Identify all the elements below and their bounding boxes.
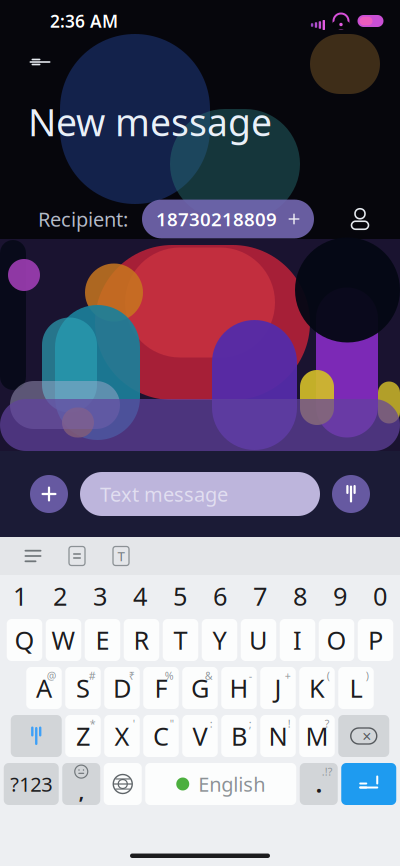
button[interactable]: 18730218809 [142, 200, 314, 238]
staticText: # [89, 668, 96, 683]
staticText: B [231, 719, 247, 753]
staticText: ? [325, 716, 330, 731]
staticText: 18730218809 [156, 207, 277, 231]
button[interactable] [280, 619, 315, 661]
staticText: + [285, 668, 291, 683]
button[interactable]: Shift [11, 715, 62, 757]
staticText: Y [212, 623, 226, 657]
button[interactable]: ₹ [104, 667, 140, 709]
button[interactable]: Return [341, 763, 396, 805]
staticText: 2:36 AM [50, 9, 118, 32]
staticText: ' [133, 716, 135, 731]
button[interactable]: Send [330, 472, 372, 516]
button[interactable]: ?123 [4, 763, 59, 805]
button[interactable]: 8 [280, 581, 320, 611]
staticText: F [154, 671, 167, 705]
button[interactable] [124, 619, 159, 661]
staticText: @ [47, 668, 57, 683]
button[interactable]: English [145, 763, 296, 805]
button[interactable]: 6 [200, 581, 240, 611]
button[interactable]: : [182, 715, 218, 757]
staticText: . [316, 769, 322, 799]
button[interactable]: Delete [338, 715, 389, 757]
button[interactable]: Text message [80, 472, 320, 516]
staticText: ) [366, 668, 369, 683]
staticText: A [36, 671, 52, 705]
button[interactable]: Emoji [62, 763, 100, 805]
button[interactable]: " [143, 715, 179, 757]
staticText: S [76, 671, 90, 705]
button[interactable]: Add attachment [28, 472, 70, 516]
staticText: 1 [13, 579, 27, 613]
button[interactable]: Menu [14, 541, 52, 571]
button[interactable]: 0 [360, 581, 400, 611]
staticText: 7 [253, 579, 267, 613]
staticText: New message [28, 97, 272, 147]
button[interactable]: Text style [102, 541, 140, 571]
button[interactable] [202, 619, 237, 661]
staticText: T [173, 623, 187, 657]
staticText: ?123 [10, 771, 52, 797]
button[interactable]: ) [338, 667, 374, 709]
button[interactable] [7, 619, 42, 661]
staticText: I [293, 623, 302, 657]
button[interactable]: Back [18, 43, 62, 81]
button[interactable]: ' [104, 715, 140, 757]
button[interactable] [358, 619, 393, 661]
staticText: .!? [322, 764, 333, 779]
button[interactable]: 2 [40, 581, 80, 611]
button[interactable]: 3 [80, 581, 120, 611]
staticText: 6 [213, 579, 227, 613]
staticText: 3 [93, 579, 107, 613]
staticText: % [165, 668, 174, 683]
staticText: 5 [173, 579, 187, 613]
staticText: , [79, 779, 84, 804]
button[interactable]: 5 [160, 581, 200, 611]
staticText: C [153, 719, 169, 753]
staticText: ( [327, 668, 330, 683]
staticText: U [249, 623, 268, 657]
button[interactable]: Choose contact [338, 199, 382, 239]
staticText: English [198, 771, 265, 797]
staticText: 8 [293, 579, 307, 613]
button[interactable]: 1 [0, 581, 40, 611]
button[interactable] [163, 619, 198, 661]
button[interactable]: ? [299, 715, 335, 757]
button[interactable]: ! [260, 715, 296, 757]
button[interactable]: + [260, 667, 296, 709]
button[interactable]: * [65, 715, 101, 757]
staticText: - [249, 668, 252, 683]
staticText: R [133, 623, 149, 657]
staticText: × [362, 725, 371, 747]
staticText: J [274, 671, 281, 705]
staticText: V [192, 719, 207, 753]
button[interactable]: Clipboard [58, 541, 96, 571]
button[interactable]: 4 [120, 581, 160, 611]
button[interactable]: ; [221, 715, 257, 757]
button[interactable]: 9 [320, 581, 360, 611]
staticText: Q [14, 623, 34, 657]
staticText: P [368, 623, 383, 657]
button[interactable]: # [65, 667, 101, 709]
staticText: Recipient: [38, 206, 128, 232]
staticText: M [305, 719, 328, 753]
button[interactable]: @ [26, 667, 62, 709]
staticText: 2 [53, 579, 67, 613]
button[interactable]: % [143, 667, 179, 709]
staticText: : [210, 716, 213, 731]
button[interactable] [319, 619, 354, 661]
button[interactable] [46, 619, 81, 661]
button[interactable] [85, 619, 120, 661]
staticText: K [309, 671, 325, 705]
button[interactable]: - [221, 667, 257, 709]
button[interactable] [241, 619, 276, 661]
button[interactable]: Switch language [104, 763, 142, 805]
staticText: O [326, 623, 346, 657]
staticText: D [113, 671, 131, 705]
staticText: G [191, 671, 209, 705]
button[interactable]: 7 [240, 581, 280, 611]
button[interactable]: .!? [300, 763, 338, 805]
button[interactable]: & [182, 667, 218, 709]
staticText: T [117, 547, 124, 565]
button[interactable]: ( [299, 667, 335, 709]
